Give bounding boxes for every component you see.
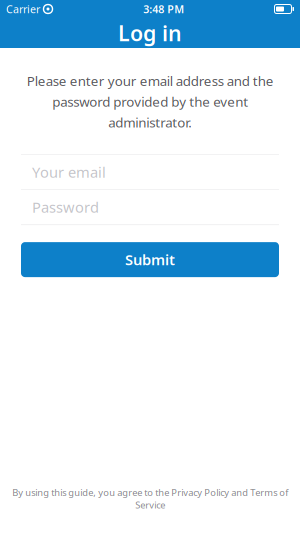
staticText: Your email bbox=[32, 162, 106, 182]
staticText: Password bbox=[32, 197, 99, 217]
button[interactable]: Your email bbox=[21, 155, 279, 189]
staticText: 3:48 PM bbox=[143, 2, 184, 16]
staticText: Log in bbox=[118, 19, 182, 47]
staticText: Carrier bbox=[6, 2, 40, 16]
staticText: By using this guide, you agree to the Pr… bbox=[12, 486, 288, 511]
button[interactable]: Password bbox=[21, 190, 279, 224]
staticText: Submit bbox=[125, 250, 175, 269]
staticText: Please enter your email address and the … bbox=[26, 72, 273, 131]
button[interactable]: By using this guide, you agree to the Pr… bbox=[10, 486, 290, 511]
button[interactable]: Submit bbox=[21, 242, 279, 277]
